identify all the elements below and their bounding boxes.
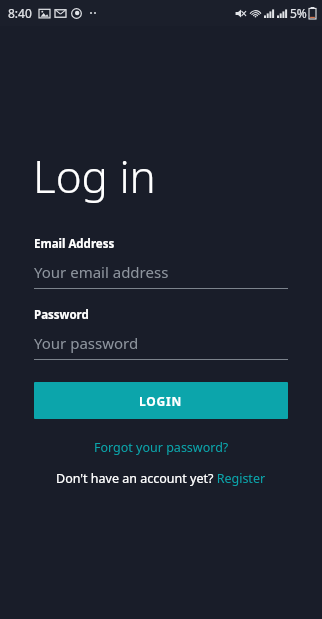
button[interactable]: Forgot your password? <box>88 437 235 458</box>
staticText: Your email address <box>34 262 169 282</box>
staticText: Email Address <box>34 236 115 252</box>
staticText: 8:40 <box>8 5 32 21</box>
button[interactable]: Your email address <box>34 262 288 289</box>
button[interactable]: Don't have an account yet? Register <box>50 468 272 489</box>
button[interactable]: Your password <box>34 333 288 360</box>
staticText: Your password <box>34 333 139 353</box>
staticText: Log in <box>33 146 156 206</box>
staticText: Forgot your password? <box>94 439 229 456</box>
button[interactable]: LOGIN <box>34 382 288 419</box>
staticText: LOGIN <box>139 393 183 409</box>
staticText: Password <box>34 307 89 323</box>
staticText: Don't have an account yet? Register <box>56 470 266 487</box>
staticText: 5% <box>290 5 307 21</box>
